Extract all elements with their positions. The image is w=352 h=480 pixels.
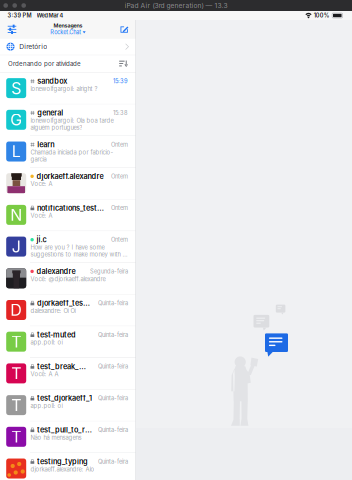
staticText: lonewolfgargoil: Ola boa tarde alguém po… — [30, 117, 113, 131]
staticText: lonewolfgargoil: alright ? — [30, 85, 97, 92]
staticText: Segunda-feira — [90, 268, 128, 275]
staticText: djorkaeff.alexandre: Alo — [30, 466, 94, 473]
button[interactable]: dalexandre — [0, 263, 136, 295]
staticText: test_break_mar... — [37, 362, 92, 371]
button[interactable]: T — [0, 390, 136, 421]
staticText: Quinta-feira — [98, 458, 128, 465]
staticText: Ordenando por atividade — [8, 60, 81, 67]
staticText: Ontem — [111, 173, 128, 180]
staticText: N — [10, 205, 22, 225]
staticText: 3:39 PM — [7, 12, 31, 19]
button[interactable]: djorkaeff.alexandre — [0, 168, 136, 199]
staticText: How are you ? I have some suggestions to… — [30, 244, 128, 258]
staticText: test_djorkaeff_1 — [37, 394, 92, 403]
staticText: 100% — [314, 12, 330, 19]
staticText: 15:39 — [113, 78, 128, 85]
staticText: general — [37, 108, 63, 117]
button[interactable]: D — [0, 295, 136, 326]
staticText: Wed Mar 4 — [36, 12, 63, 19]
staticText: Ontem — [111, 236, 128, 243]
staticText: Mensagens — [53, 22, 82, 29]
button[interactable]: L — [0, 136, 136, 168]
staticText: Você: @djorkaeff.alexandre — [30, 275, 105, 283]
staticText: T — [11, 364, 21, 383]
staticText: Ontem — [111, 141, 128, 148]
staticText: S — [11, 78, 21, 98]
staticText: G — [10, 110, 22, 129]
staticText: Chamada iniciada por fabricio-garcia — [30, 149, 113, 163]
button[interactable]: T — [0, 421, 136, 453]
button[interactable]: Rocket.Chat — [50, 29, 86, 36]
button[interactable]: N — [0, 199, 136, 231]
button[interactable]: J — [0, 231, 136, 263]
staticText: D — [10, 300, 22, 320]
button[interactable]: Ordenando por atividade — [0, 55, 136, 72]
staticText: dalexandre: Oi Oi — [30, 307, 75, 314]
staticText: Quinta-feira — [98, 363, 128, 370]
staticText: learn — [37, 140, 54, 149]
button[interactable]: G — [0, 104, 136, 136]
staticText: notifications_test_dj... — [37, 204, 105, 212]
staticText: sandbox — [37, 77, 67, 86]
staticText: test_pull_to_refr... — [37, 425, 92, 434]
staticText: T — [11, 332, 21, 351]
staticText: J — [12, 237, 21, 256]
button[interactable]: testing_typing — [0, 453, 136, 480]
staticText: Quinta-feira — [98, 395, 128, 402]
staticText: Rocket.Chat — [50, 29, 81, 36]
staticText: Você: A — [30, 180, 52, 187]
staticText: test-muted — [37, 330, 76, 339]
staticText: app.poll: oi — [30, 339, 62, 346]
staticText: djorkaeff_test_b... — [37, 299, 92, 308]
staticText: Quinta-feira — [98, 331, 128, 338]
staticText: 15:38 — [113, 109, 128, 116]
button[interactable]: T — [0, 358, 136, 390]
staticText: Diretório — [19, 43, 47, 51]
staticText: Você: A A — [30, 371, 58, 378]
staticText: Quinta-feira — [98, 300, 128, 306]
staticText: djorkaeff.alexandre — [36, 172, 103, 181]
staticText: iPad Air (3rd generation) — 13.3 — [124, 1, 227, 10]
staticText: testing_typing — [37, 457, 88, 466]
button[interactable]: Sort and filter — [0, 20, 24, 38]
staticText: Não há mensagens — [30, 434, 81, 441]
button[interactable]: Diretório — [0, 38, 136, 55]
button[interactable]: New message — [113, 20, 136, 38]
staticText: Quinta-feira — [98, 426, 128, 433]
staticText: Ontem — [111, 204, 128, 211]
staticText: T — [11, 427, 21, 446]
staticText: app.poll: oi — [30, 402, 62, 409]
staticText: ji.c — [36, 235, 46, 244]
button[interactable]: S — [0, 73, 136, 104]
staticText: T — [11, 395, 21, 415]
staticText: dalexandre — [36, 267, 75, 276]
button[interactable]: T — [0, 326, 136, 358]
staticText: Você: A — [30, 212, 52, 219]
staticText: L — [12, 142, 21, 161]
